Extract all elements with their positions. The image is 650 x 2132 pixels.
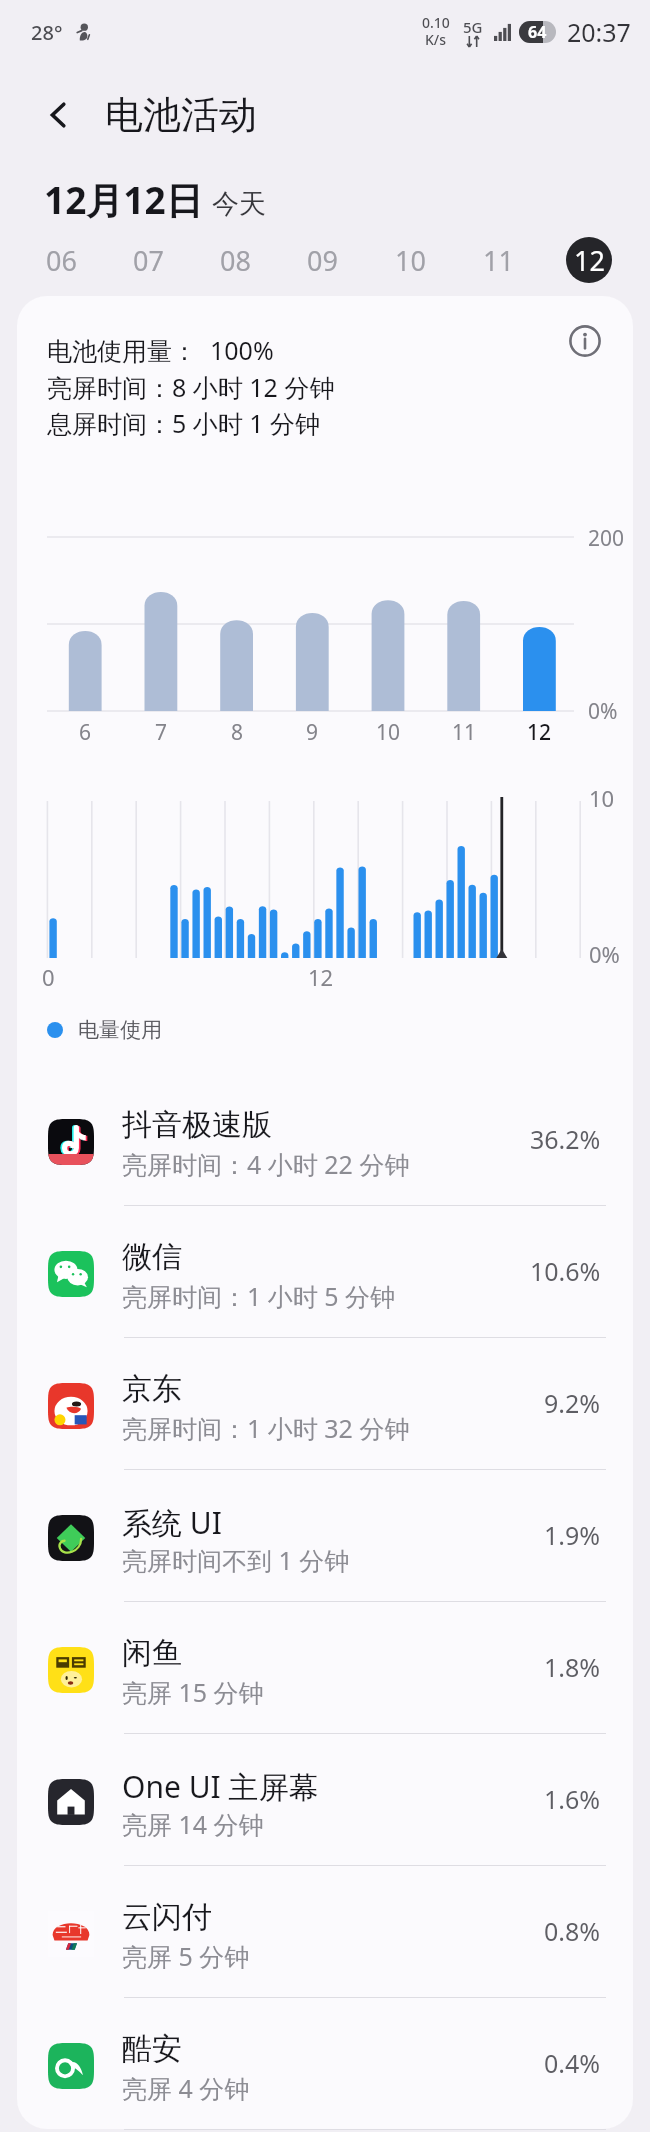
staticText: 京东 <box>122 1370 182 1408</box>
staticText: 12 <box>308 962 334 992</box>
button[interactable]: 09 <box>299 237 345 283</box>
staticText: 12 <box>527 718 552 747</box>
staticText: 微信 <box>122 1238 182 1276</box>
staticText: 9.2% <box>544 1386 601 1420</box>
staticText: 亮屏时间：4 小时 22 分钟 <box>122 1147 410 1181</box>
staticText: 11 <box>452 718 477 747</box>
staticText: 电池使用量： 100% <box>47 333 274 367</box>
staticText: 亮屏时间：1 小时 32 分钟 <box>122 1411 410 1445</box>
staticText: 电量使用 <box>78 1017 162 1043</box>
staticText: 酷安 <box>122 2030 182 2068</box>
staticText: 200 <box>588 524 625 553</box>
button[interactable]: 12 <box>566 237 612 283</box>
staticText: 8 <box>231 718 244 747</box>
staticText: 0% <box>588 697 618 726</box>
staticText: 1.8% <box>544 1650 601 1684</box>
staticText: 0.10 <box>422 13 450 32</box>
staticText: 1.6% <box>544 1782 601 1816</box>
staticText: 闲鱼 <box>122 1634 182 1672</box>
staticText: 0% <box>589 939 620 969</box>
staticText: 抖音极速版 <box>122 1106 272 1144</box>
staticText: 电池活动 <box>105 91 257 139</box>
staticText: 12月12日 <box>44 174 203 225</box>
button[interactable]: 10 <box>387 237 433 283</box>
button[interactable]: 08 <box>212 237 258 283</box>
staticText: 1.9% <box>544 1518 601 1552</box>
button[interactable]: 京东 <box>0 1344 650 1476</box>
staticText: 10 <box>589 783 615 813</box>
staticText: 云闪付 <box>122 1898 212 1936</box>
staticText: 0.4% <box>544 2046 601 2080</box>
staticText: 06 <box>46 242 77 279</box>
staticText: 08 <box>220 242 251 279</box>
staticText: 息屏时间：5 小时 1 分钟 <box>47 406 321 440</box>
staticText: 亮屏时间：1 小时 5 分钟 <box>122 1279 396 1313</box>
staticText: 10 <box>376 718 401 747</box>
button[interactable]: 云闪付 <box>0 1872 650 2004</box>
staticText: 今天 <box>212 187 266 221</box>
staticText: 5G <box>463 17 483 37</box>
staticText: One UI 主屏幕 <box>122 1766 319 1807</box>
staticText: 系统 UI <box>122 1502 222 1543</box>
staticText: 0.8% <box>544 1914 601 1948</box>
staticText: 10.6% <box>530 1254 601 1288</box>
staticText: 28° <box>31 19 63 46</box>
staticText: 9 <box>306 718 319 747</box>
staticText: K/s <box>425 30 447 49</box>
button[interactable]: 系统 UI <box>0 1476 650 1608</box>
button[interactable]: 闲鱼 <box>0 1608 650 1740</box>
staticText: 亮屏 15 分钟 <box>122 1675 264 1709</box>
button[interactable]: 微信 <box>0 1212 650 1344</box>
staticText: 亮屏时间：8 小时 12 分钟 <box>47 370 335 404</box>
staticText: 6 <box>79 718 92 747</box>
staticText: 10 <box>395 242 426 279</box>
staticText: 11 <box>483 242 514 279</box>
staticText: 12 <box>574 242 605 279</box>
staticText: 亮屏 14 分钟 <box>122 1807 264 1841</box>
staticText: 64 <box>528 21 547 43</box>
staticText: 36.2% <box>530 1122 601 1156</box>
staticText: 亮屏时间不到 1 分钟 <box>122 1543 350 1577</box>
button[interactable]: One UI 主屏幕 <box>0 1740 650 1872</box>
staticText: 20:37 <box>567 15 631 49</box>
button[interactable]: 酷安 <box>0 2004 650 2132</box>
staticText: 07 <box>133 242 164 279</box>
button[interactable]: Info <box>562 318 608 364</box>
button[interactable]: 11 <box>475 237 521 283</box>
button[interactable]: Back <box>36 92 82 138</box>
staticText: 0 <box>42 962 55 992</box>
button[interactable]: 06 <box>38 237 84 283</box>
staticText: 7 <box>155 718 168 747</box>
button[interactable]: 抖音极速版 <box>0 1080 650 1212</box>
staticText: 09 <box>307 242 338 279</box>
staticText: 亮屏 5 分钟 <box>122 1939 250 1973</box>
staticText: 亮屏 4 分钟 <box>122 2071 250 2105</box>
button[interactable]: 07 <box>125 237 171 283</box>
